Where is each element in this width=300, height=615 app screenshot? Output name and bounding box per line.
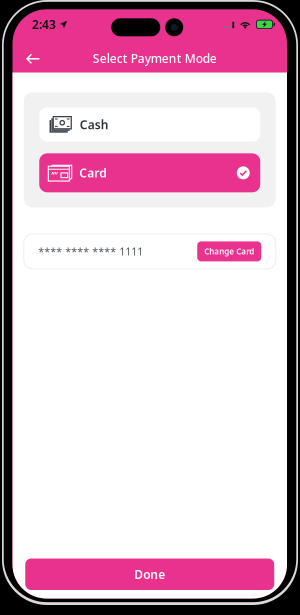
staticText: Select Payment Mode — [93, 50, 217, 66]
button[interactable]: Back — [19, 45, 46, 72]
staticText: 2:43 — [32, 16, 56, 32]
button[interactable]: Card — [39, 153, 260, 192]
button[interactable]: Done — [25, 558, 274, 590]
staticText: Change Card — [204, 246, 254, 257]
button[interactable]: Change Card — [197, 241, 261, 261]
staticText: **** **** **** 1111 — [38, 244, 143, 258]
staticText: Card — [79, 165, 107, 181]
button[interactable]: Cash — [39, 107, 260, 142]
staticText: Cash — [80, 117, 109, 132]
staticText: Done — [134, 566, 165, 582]
